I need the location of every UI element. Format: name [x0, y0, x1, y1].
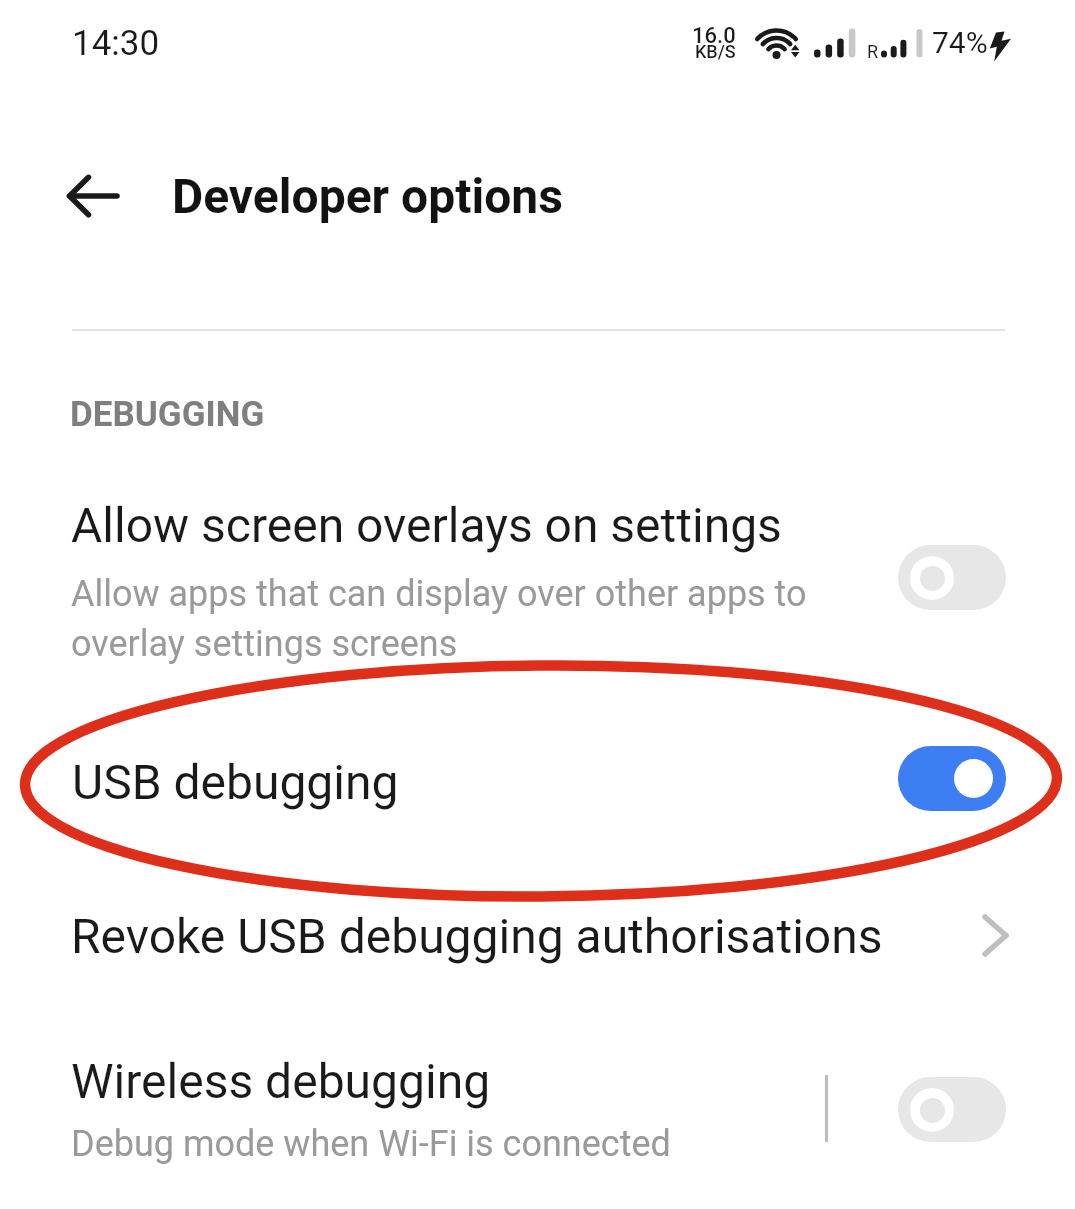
staticText: USB debugging — [72, 754, 399, 810]
button[interactable] — [0, 1030, 1075, 1209]
staticText: DEBUGGING — [70, 394, 265, 435]
button[interactable] — [0, 720, 1075, 840]
button[interactable] — [898, 746, 1006, 811]
staticText: Developer options — [172, 168, 563, 224]
staticText: Revoke USB debugging authorisations — [71, 908, 883, 964]
button[interactable] — [55, 165, 125, 230]
staticText: 14:30 — [72, 23, 160, 64]
staticText: KB/S — [695, 41, 736, 62]
staticText: overlay settings screens — [71, 623, 458, 665]
staticText: 74% — [932, 25, 988, 60]
staticText: Debug mode when Wi-Fi is connected — [71, 1123, 671, 1165]
button[interactable] — [898, 545, 1006, 610]
button[interactable] — [0, 880, 1075, 995]
staticText: Allow apps that can display over other a… — [71, 573, 807, 615]
staticText: R — [867, 41, 879, 62]
staticText: Allow screen overlays on settings — [71, 497, 782, 553]
button[interactable] — [0, 470, 1075, 680]
staticText: Wireless debugging — [71, 1053, 491, 1109]
button[interactable] — [898, 1077, 1006, 1142]
staticText: 16.0 — [692, 23, 736, 49]
